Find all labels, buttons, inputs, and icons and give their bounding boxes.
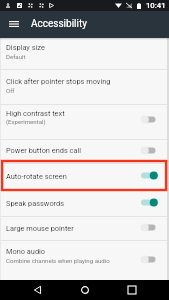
- button[interactable]: Back: [27, 280, 48, 300]
- staticText: Accessibility: [31, 18, 87, 30]
- button[interactable]: Speak passwords on: [140, 196, 160, 209]
- button[interactable]: [0, 240, 169, 280]
- staticText: (Experimental): [6, 118, 46, 125]
- staticText: Mono audio: [6, 247, 46, 256]
- button[interactable]: High contrast text off: [140, 113, 160, 126]
- button[interactable]: Power button ends call off: [140, 144, 160, 157]
- button[interactable]: Auto-rotate screen on: [140, 169, 160, 182]
- button[interactable]: [0, 216, 169, 241]
- staticText: Large mouse pointer: [6, 224, 74, 233]
- button[interactable]: Home: [74, 280, 95, 300]
- staticText: High contrast text: [6, 109, 65, 118]
- button[interactable]: Mono audio off: [140, 253, 160, 266]
- button[interactable]: [0, 189, 169, 216]
- button[interactable]: Large mouse pointer off: [140, 221, 160, 234]
- staticText: Display size: [6, 43, 45, 52]
- staticText: Click after pointer stops moving: [6, 77, 111, 86]
- button[interactable]: Recent apps: [121, 280, 142, 300]
- button[interactable]: [0, 104, 169, 139]
- button[interactable]: [0, 163, 169, 189]
- button[interactable]: [0, 69, 169, 104]
- button[interactable]: [0, 35, 169, 70]
- staticText: Combine channels when playing audio: [6, 257, 110, 264]
- staticText: 10:41: [146, 1, 166, 10]
- staticText: Speak passwords: [6, 199, 65, 208]
- staticText: Power button ends call: [6, 146, 82, 155]
- button[interactable]: Open navigation drawer: [4, 14, 23, 34]
- staticText: Off: [6, 87, 15, 94]
- staticText: Default: [6, 53, 26, 60]
- staticText: Auto-rotate screen: [6, 172, 67, 181]
- button[interactable]: [0, 139, 169, 163]
